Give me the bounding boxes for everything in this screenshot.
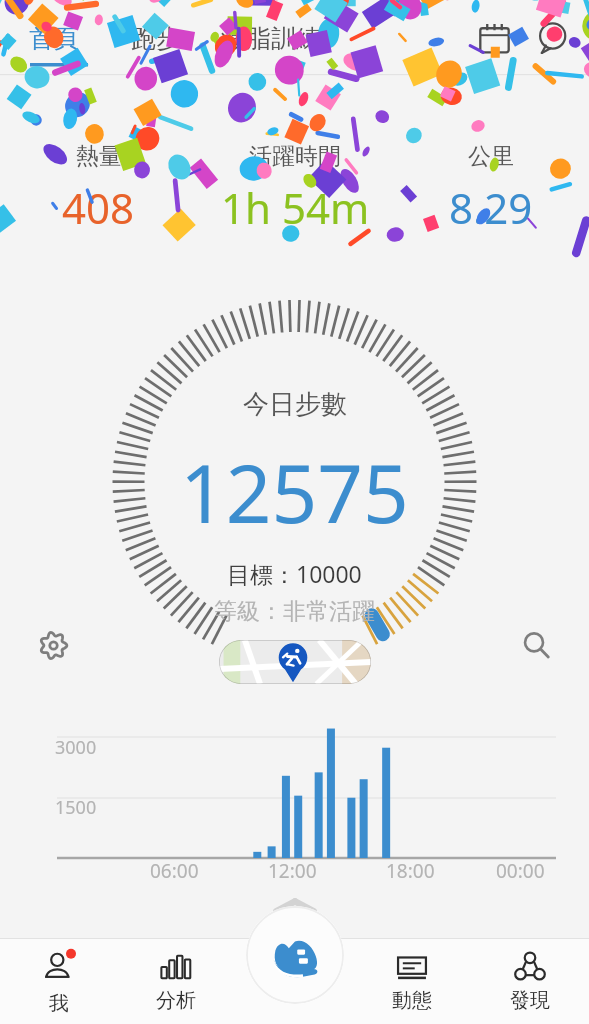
staticText: 動態 <box>392 988 432 1013</box>
button[interactable]: 活躍時間 <box>197 140 393 238</box>
staticText: 分析 <box>156 988 196 1013</box>
staticText: 我 <box>49 991 69 1016</box>
staticText: 1500 <box>55 795 97 820</box>
button[interactable]: 減脂訓練 <box>218 13 324 64</box>
button[interactable]: Expand <box>265 890 325 922</box>
button[interactable]: 熱量 <box>0 140 197 238</box>
staticText: 408 <box>62 179 135 236</box>
button[interactable]: 首頁 <box>26 13 82 64</box>
staticText: 8.29 <box>449 179 533 236</box>
staticText: 減脂訓練 <box>221 23 321 54</box>
staticText: 發現 <box>510 988 550 1013</box>
staticText: 跑步 <box>131 23 181 54</box>
staticText: 3000 <box>55 735 97 760</box>
staticText: 等級：非常活躍 <box>214 597 375 626</box>
button[interactable]: Settings <box>30 622 76 668</box>
staticText: 首頁 <box>29 23 79 54</box>
staticText: 活躍時間 <box>249 142 341 171</box>
staticText: 今日步數 <box>243 388 347 421</box>
button[interactable]: 動態 <box>353 938 471 1024</box>
button[interactable]: 發現 <box>471 938 589 1024</box>
button[interactable]: 跑步 <box>128 13 184 64</box>
staticText: 12:00 <box>268 858 317 884</box>
staticText: 1h 54m <box>221 179 370 236</box>
staticText: 12575 <box>180 437 409 546</box>
staticText: 00:00 <box>496 858 545 884</box>
staticText: 公里 <box>468 142 514 171</box>
staticText: 06:00 <box>150 858 199 884</box>
button[interactable]: Calendar <box>471 15 517 61</box>
staticText: 熱量 <box>76 142 122 171</box>
button[interactable]: Messages <box>529 15 575 61</box>
button[interactable]: Route map <box>219 640 371 684</box>
staticText: 目標：10000 <box>227 558 362 589</box>
button[interactable]: 分析 <box>117 938 235 1024</box>
staticText: 18:00 <box>386 858 435 884</box>
button[interactable]: 公里 <box>393 140 589 238</box>
button[interactable]: Search <box>513 622 559 668</box>
button[interactable]: Start run <box>246 906 344 1004</box>
button[interactable]: 我 <box>0 938 117 1024</box>
